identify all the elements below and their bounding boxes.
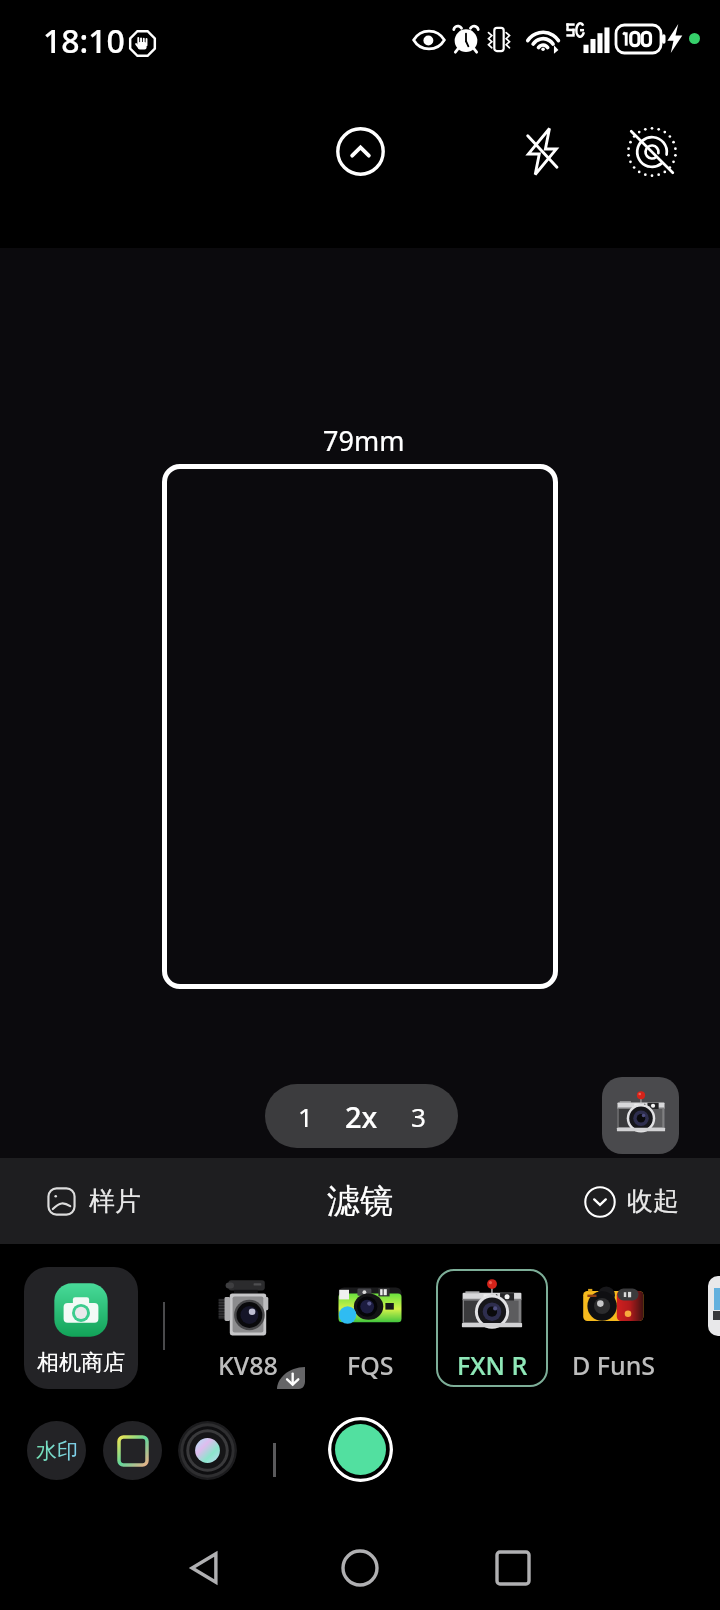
button[interactable]: Switch lens [178,1421,237,1480]
staticText: 样片 [89,1185,141,1218]
button[interactable]: Shutter [328,1417,393,1482]
staticText: FXN R [457,1348,528,1382]
button[interactable]: 收起 [584,1185,679,1218]
button[interactable]: Home [336,1544,384,1592]
staticText: 水印 [36,1438,78,1464]
staticText: 79mm [323,422,405,459]
button[interactable]: Recent apps [489,1544,537,1592]
staticText: 收起 [627,1185,679,1218]
staticText: D FunS [572,1348,656,1382]
button[interactable]: 样片 [47,1185,141,1218]
staticText: 相机商店 [37,1349,125,1377]
staticText: FQS [347,1348,394,1382]
staticText: KV88 [218,1348,278,1382]
staticText: 1 [298,1099,313,1134]
button[interactable]: FQS [314,1269,426,1387]
button[interactable]: Back [181,1544,229,1592]
button[interactable]: KV88 [192,1269,304,1387]
staticText: 2x [345,1097,378,1136]
button[interactable]: 相机商店 [24,1267,138,1389]
button[interactable]: More settings [326,117,395,186]
button[interactable]: AI scene detection off [617,117,687,187]
staticText: 滤镜 [327,1180,393,1222]
staticText: 3 [411,1099,426,1134]
button[interactable]: 水印 [27,1421,86,1480]
button[interactable]: FXN R [436,1269,548,1387]
staticText: 18:10 [43,19,125,63]
button[interactable]: Camera preset [602,1077,679,1154]
button[interactable]: Aspect ratio [103,1421,162,1480]
button[interactable]: 1 [265,1084,458,1148]
button[interactable]: Flash off [510,117,574,186]
button[interactable]: D FunS [558,1269,670,1387]
